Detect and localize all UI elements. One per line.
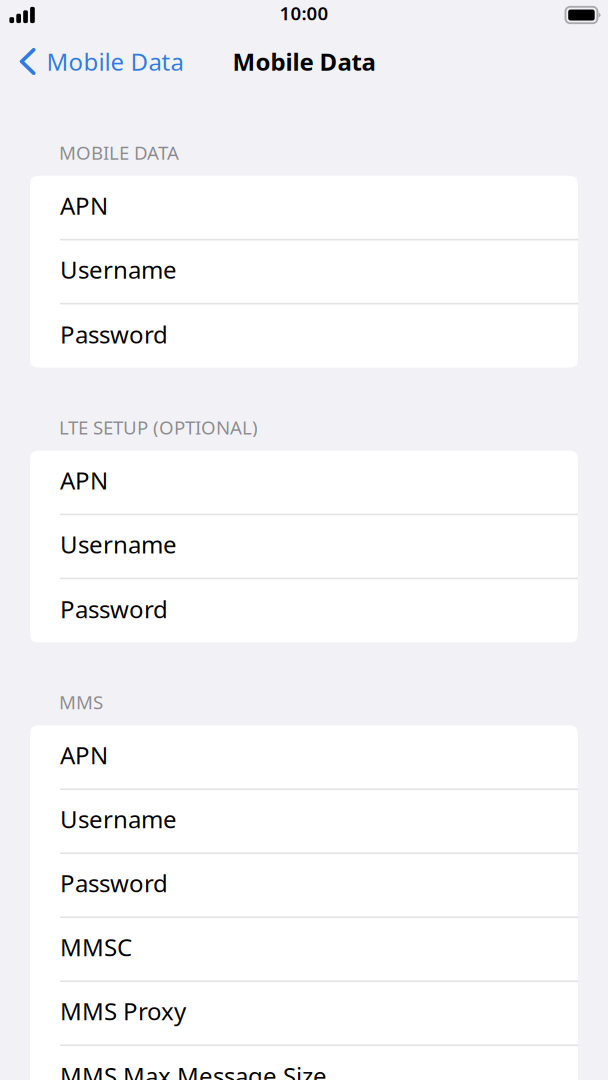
- staticText: MMSC: [60, 931, 132, 963]
- staticText: APN: [60, 189, 108, 221]
- button[interactable]: APN: [30, 451, 578, 515]
- staticText: Username: [60, 253, 177, 285]
- button[interactable]: Mobile Data: [0, 45, 195, 77]
- staticText: Mobile Data: [46, 46, 183, 77]
- staticText: MOBILE DATA: [59, 140, 179, 165]
- button[interactable]: Password: [30, 579, 578, 643]
- button[interactable]: APN: [30, 725, 578, 789]
- staticText: APN: [60, 739, 108, 771]
- button[interactable]: MMS Max Message Size: [30, 1045, 578, 1080]
- staticText: Username: [60, 528, 177, 560]
- staticText: 10:00: [279, 1, 328, 25]
- button[interactable]: Username: [30, 240, 578, 304]
- button[interactable]: APN: [30, 176, 578, 240]
- staticText: Password: [60, 318, 168, 350]
- staticText: APN: [60, 464, 108, 496]
- button[interactable]: Password: [30, 853, 578, 917]
- staticText: Password: [60, 593, 168, 625]
- button[interactable]: Username: [30, 789, 578, 853]
- staticText: MMS Proxy: [60, 995, 186, 1027]
- staticText: LTE SETUP (OPTIONAL): [59, 415, 258, 440]
- button[interactable]: MMSC: [30, 917, 578, 981]
- button[interactable]: Username: [30, 515, 578, 579]
- staticText: MMS Max Message Size: [60, 1060, 327, 1080]
- button[interactable]: Password: [30, 304, 578, 368]
- staticText: MMS: [59, 690, 103, 714]
- staticText: Password: [60, 867, 168, 899]
- button[interactable]: MMS Proxy: [30, 981, 578, 1045]
- staticText: Mobile Data: [232, 46, 375, 77]
- staticText: Username: [60, 803, 177, 835]
